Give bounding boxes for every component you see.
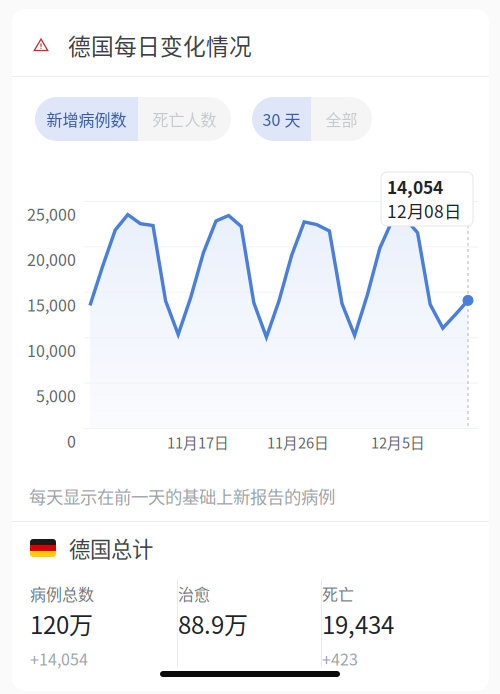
staticText: 20,000	[27, 247, 76, 271]
staticText: 10,000	[27, 338, 76, 361]
staticText: 19,434	[322, 606, 394, 641]
staticText: 全部	[325, 107, 357, 131]
staticText: 30 天	[262, 107, 300, 131]
staticText: +423	[322, 647, 358, 670]
staticText: +14,054	[30, 647, 88, 670]
staticText: 德国每日变化情况	[68, 29, 252, 61]
staticText: 德国总计	[69, 533, 153, 563]
button[interactable]: 30 天	[252, 97, 311, 141]
staticText: 病例总数	[30, 582, 94, 605]
staticText: 5,000	[36, 384, 76, 407]
staticText: 治愈	[178, 582, 210, 605]
staticText: 11月26日	[267, 431, 329, 453]
button[interactable]: 全部	[311, 97, 372, 141]
staticText: 11月17日	[167, 431, 229, 453]
staticText: 12月08日	[387, 198, 461, 223]
button[interactable]: 新增病例数	[35, 97, 138, 141]
button[interactable]: 死亡人数	[138, 97, 231, 141]
staticText: 25,000	[27, 202, 76, 225]
staticText: 120万	[30, 606, 93, 641]
staticText: 15,000	[27, 293, 76, 316]
staticText: 新增病例数	[46, 107, 126, 131]
staticText: 死亡人数	[152, 107, 216, 131]
staticText: 88.9万	[178, 606, 248, 641]
staticText: 每天显示在前一天的基础上新报告的病例	[29, 483, 335, 509]
staticText: 12月5日	[371, 431, 425, 453]
staticText: 14,054	[387, 174, 443, 199]
staticText: 0	[67, 429, 76, 452]
staticText: 死亡	[322, 582, 354, 605]
